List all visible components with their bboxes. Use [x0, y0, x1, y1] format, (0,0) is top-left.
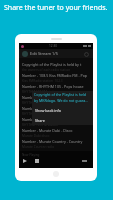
staticText: Murate Dubi disco [22, 134, 50, 137]
button[interactable]: Number - 108.5 Kiss FMRadio FM - Pop [19, 71, 93, 82]
button[interactable]: Show back info [32, 105, 93, 115]
staticText: the owners of each radio station [22, 68, 71, 71]
staticText: Copyright of the Playlist is held [34, 92, 87, 97]
staticText: Edit Stream 1/5 [30, 51, 58, 56]
staticText: RHYTHM 105 FM station [22, 112, 59, 115]
staticText: by MKRdago. We do not guara... [34, 98, 89, 103]
staticText: Copyright of the Playlist is held by t [22, 62, 82, 67]
staticText: Now Playing [22, 153, 40, 157]
staticText: RHYTHM 105 FM station [22, 90, 59, 93]
staticText: RHYTHM 105 FM station [22, 123, 59, 126]
staticText: Number - RHYTHM 105 - Pops house [22, 117, 84, 122]
staticText: Number - RHYTHM 105 - Pops house [22, 84, 84, 89]
staticText: Number - Murate Dubi - Disco Armstrong [22, 128, 91, 133]
button[interactable]: Number - Murate Country - Country [19, 137, 93, 148]
staticText: Kiss FMRadio station 102.3 [22, 79, 63, 82]
button[interactable]: Number - RHYTHM 105 - Pops house [19, 104, 93, 115]
button[interactable]: Share [32, 115, 93, 125]
button[interactable]: Number - RHYTHM 105 - Pops house [19, 93, 93, 104]
button[interactable]: Stop [34, 158, 40, 164]
button[interactable]: Number - RHYTHM 105 - Pops house [19, 115, 93, 126]
staticText: 12:30 [49, 44, 58, 48]
button[interactable]: Copyright of the Playlist is held by t [19, 60, 93, 71]
button[interactable]: Number - Murate Dubi - Disco Armstrong [19, 126, 93, 137]
button[interactable]: Number - RHYTHM 105 - Pops house [19, 82, 93, 93]
staticText: Number - 108.5 Kiss FMRadio FM - Pop [22, 73, 88, 78]
staticText: Number - RHYTHM 105 - Pops house [22, 95, 84, 100]
button[interactable]: Play [22, 158, 28, 164]
staticText: Number - Murate Country - Country [22, 139, 83, 144]
staticText: Murate Country radio [22, 145, 55, 148]
staticText: Show back info [35, 108, 62, 113]
button[interactable]: Search [83, 51, 89, 57]
staticText: Share the tuner to your friends. [4, 3, 108, 13]
staticText: Share [35, 118, 45, 123]
staticText: Number - RHYTHM 105 - Pops house [22, 106, 84, 111]
button[interactable]: Edit Stream 1/5 [19, 49, 93, 58]
staticText: RHYTHM 105 FM station [22, 101, 59, 104]
